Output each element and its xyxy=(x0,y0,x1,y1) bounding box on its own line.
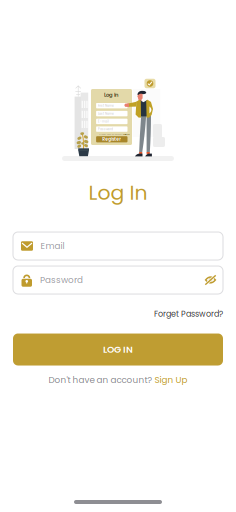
staticText: Log in xyxy=(104,91,119,99)
staticText: Log in xyxy=(123,133,129,136)
staticText: E-mail xyxy=(98,119,109,123)
staticText: Don't have an account? xyxy=(48,374,152,386)
staticText: Last Name xyxy=(98,111,114,116)
staticText: Already have an account? xyxy=(99,133,123,136)
staticText: LOG IN xyxy=(103,343,133,356)
staticText: Password xyxy=(40,274,83,286)
staticText: Register xyxy=(102,136,121,142)
staticText: Sign Up xyxy=(152,374,187,386)
button[interactable]: LOG IN xyxy=(13,333,223,365)
button[interactable]: Forget Password? xyxy=(154,308,223,320)
button[interactable]: Show password xyxy=(205,267,223,293)
staticText: First Name xyxy=(98,104,114,108)
staticText: Log In xyxy=(88,178,147,207)
button[interactable]: Sign Up xyxy=(152,374,187,386)
staticText: Forget Password? xyxy=(154,308,223,320)
staticText: Email xyxy=(40,240,64,252)
staticText: Password xyxy=(98,127,113,131)
